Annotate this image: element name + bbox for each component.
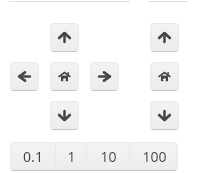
button[interactable]: Home	[50, 62, 79, 91]
button[interactable]: 1	[56, 142, 86, 171]
staticText: 1	[67, 147, 76, 166]
staticText: 0.1	[23, 147, 43, 166]
button[interactable]: Move up	[150, 23, 179, 52]
button[interactable]: 100	[130, 142, 178, 171]
button[interactable]: Pan right	[90, 62, 119, 91]
button[interactable]: Reset view	[150, 62, 179, 91]
button[interactable]: Pan down	[50, 101, 79, 130]
button[interactable]: Move down	[150, 101, 179, 130]
button[interactable]: Pan left	[10, 62, 39, 91]
staticText: 10	[100, 147, 117, 166]
button[interactable]: 0.1	[10, 142, 55, 171]
staticText: 100	[142, 147, 167, 166]
button[interactable]: Pan up	[50, 23, 79, 52]
button[interactable]: 10	[87, 142, 129, 171]
